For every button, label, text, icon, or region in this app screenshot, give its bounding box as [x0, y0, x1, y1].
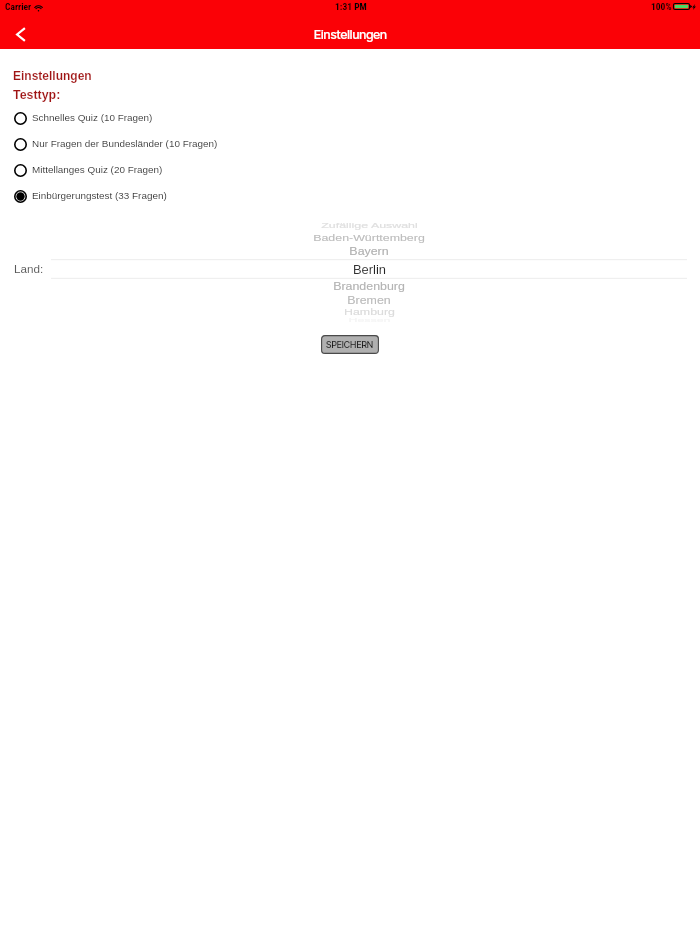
staticText: 1:31 PM	[335, 1, 367, 12]
staticText: Einstellungen	[314, 27, 387, 42]
button[interactable]: Schnelles Quiz (10 Fragen)	[0, 105, 700, 131]
staticText: Bayern	[349, 246, 389, 258]
button[interactable]: SPEICHERN	[321, 335, 379, 354]
button[interactable]: Nur Fragen der Bundesländer (10 Fragen)	[0, 131, 700, 157]
staticText: Baden-Württemberg	[313, 232, 425, 244]
staticText: 100%	[651, 1, 672, 12]
staticText: Carrier	[5, 1, 32, 12]
staticText: SPEICHERN	[326, 339, 374, 350]
button[interactable]: Back	[1, 20, 39, 49]
button[interactable]: Einbürgerungstest (33 Fragen)	[0, 183, 700, 209]
staticText: Land:	[14, 262, 44, 275]
staticText: Einbürgerungstest (33 Fragen)	[32, 190, 167, 201]
staticText: Hamburg	[344, 307, 395, 317]
staticText: Testtyp:	[13, 88, 61, 102]
staticText: Zufällige Auswahl	[321, 222, 418, 230]
staticText: Nur Fragen der Bundesländer (10 Fragen)	[32, 138, 218, 149]
staticText: Schnelles Quiz (10 Fragen)	[32, 112, 153, 123]
staticText: Berlin	[353, 262, 386, 276]
staticText: Hessen	[348, 317, 391, 323]
staticText: Brandenburg	[333, 279, 405, 292]
staticText: Einstellungen	[13, 69, 92, 82]
staticText: Bremen	[347, 295, 391, 307]
staticText: Mittellanges Quiz (20 Fragen)	[32, 164, 163, 175]
button[interactable]: Mittellanges Quiz (20 Fragen)	[0, 157, 700, 183]
